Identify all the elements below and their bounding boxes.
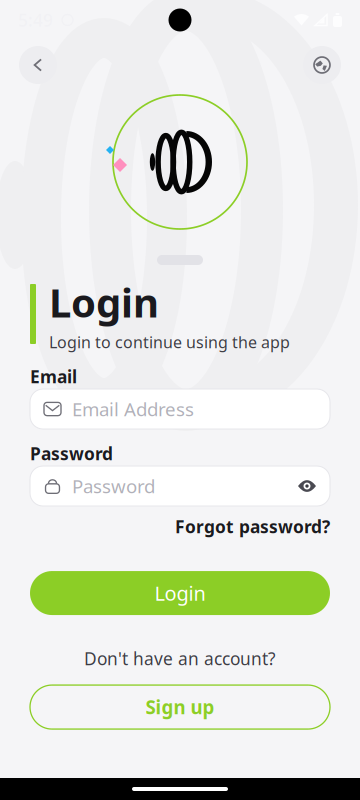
staticText: Email bbox=[30, 365, 77, 388]
staticText: Login bbox=[49, 275, 159, 328]
staticText: Password bbox=[30, 442, 113, 465]
button[interactable]: Back bbox=[19, 46, 57, 84]
staticText: Don't have an account? bbox=[84, 647, 276, 670]
staticText: Password bbox=[72, 474, 155, 498]
staticText: Forgot password? bbox=[175, 515, 330, 538]
staticText: Login to continue using the app bbox=[49, 331, 290, 353]
button[interactable]: Show password bbox=[298, 477, 316, 495]
button[interactable]: Login bbox=[30, 571, 330, 615]
button[interactable]: Forgot password? bbox=[175, 515, 330, 538]
button[interactable]: Change language bbox=[303, 46, 341, 84]
staticText: Login bbox=[154, 580, 205, 606]
staticText: Sign up bbox=[145, 695, 214, 719]
button[interactable]: Sign up bbox=[30, 685, 330, 729]
staticText: Email Address bbox=[72, 397, 194, 421]
